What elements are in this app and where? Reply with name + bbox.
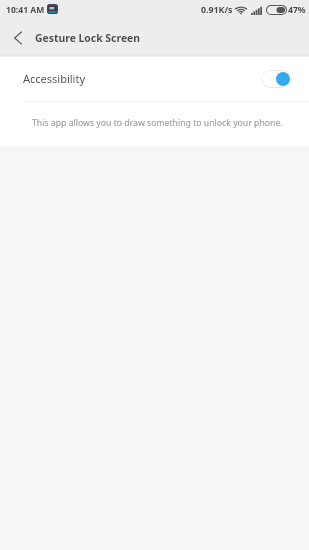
staticText: 0.91K/s [201,4,233,16]
staticText: Accessibility [23,71,86,86]
staticText: 47% [288,4,306,16]
staticText: 10:41 AM [6,4,45,16]
button[interactable]: Accessibility [0,57,309,101]
staticText: Gesture Lock Screen [35,31,141,45]
button[interactable]: Accessibility toggle [261,70,292,88]
button[interactable]: Back [0,20,35,55]
staticText: This app allows you to draw something to… [32,117,283,129]
